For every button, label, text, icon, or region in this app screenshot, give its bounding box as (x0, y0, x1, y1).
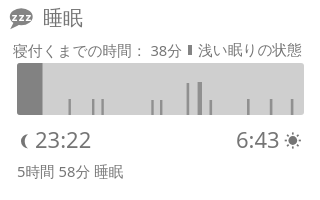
staticText: 6:43 (236, 124, 280, 154)
other: Bedtime (19, 131, 33, 151)
other: Sleep (9, 7, 34, 30)
staticText: 5時間 58分 睡眠 (17, 161, 124, 181)
other: Wake up (284, 132, 302, 150)
staticText: 浅い眠りの状態 (198, 41, 302, 60)
staticText: 寝付くまでの時間： 38分 (13, 40, 182, 60)
staticText: 睡眠 (43, 6, 83, 31)
staticText: 23:22 (35, 124, 92, 154)
staticText: ZZZ (12, 11, 33, 23)
